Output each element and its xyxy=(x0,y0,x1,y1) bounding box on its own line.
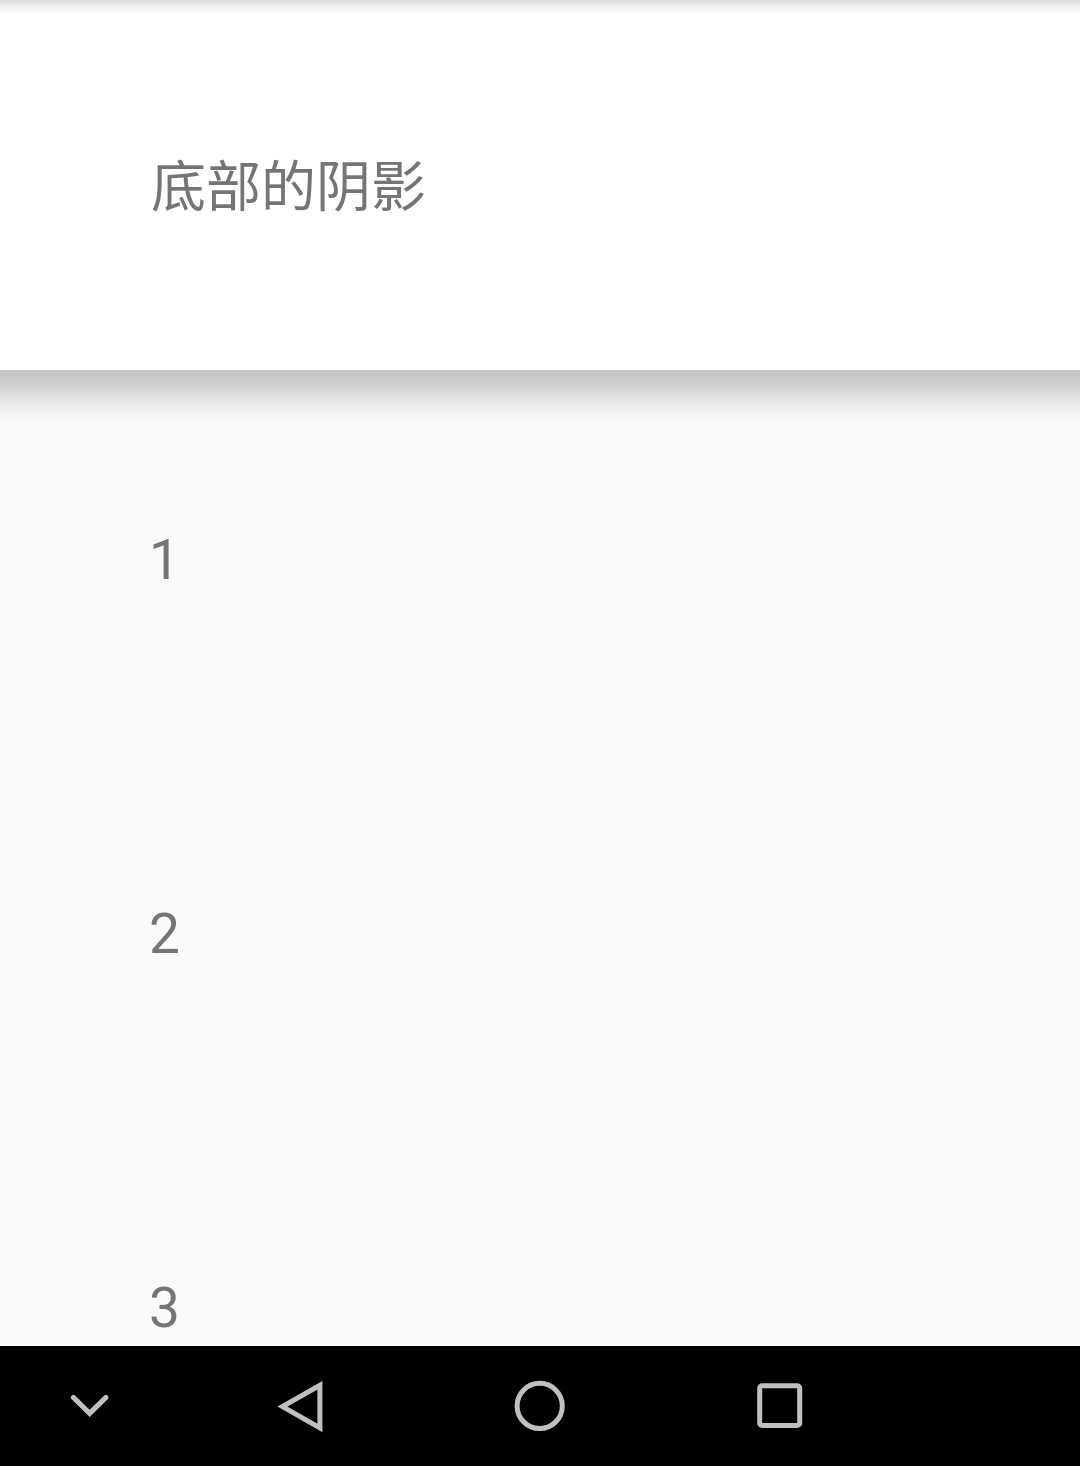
button[interactable]: 1 xyxy=(0,428,1080,802)
staticText: 底部的阴影 xyxy=(151,142,427,222)
staticText: 1 xyxy=(149,528,180,592)
button[interactable]: 3 xyxy=(0,1176,1080,1466)
button[interactable]: Home xyxy=(490,1346,590,1466)
button[interactable]: Hide keyboard xyxy=(40,1346,140,1466)
button[interactable]: 2 xyxy=(0,802,1080,1176)
staticText: 3 xyxy=(149,1276,180,1340)
button[interactable]: Back xyxy=(250,1346,350,1466)
staticText: 2 xyxy=(149,902,180,966)
button[interactable]: Recent apps xyxy=(730,1346,830,1466)
